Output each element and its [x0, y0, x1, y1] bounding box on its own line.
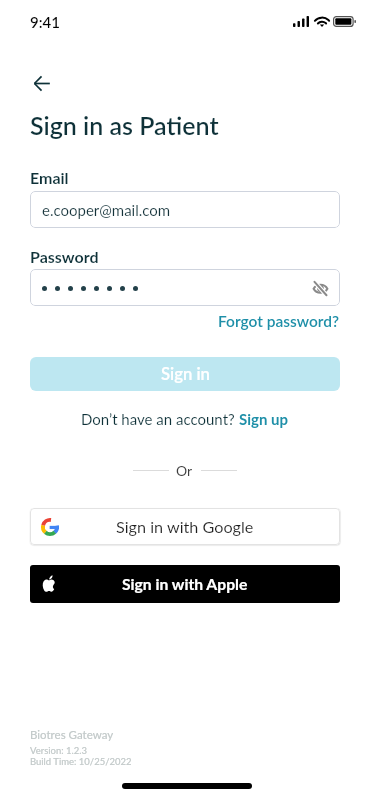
- button[interactable]: Sign up: [239, 410, 289, 428]
- staticText: Don’t have an account?: [81, 410, 239, 428]
- button[interactable]: Show password: [310, 278, 330, 298]
- button[interactable]: Sign in with Google: [30, 508, 340, 545]
- button[interactable]: Back: [22, 63, 62, 103]
- staticText: Sign in as Patient: [30, 110, 219, 140]
- button[interactable]: Show password: [30, 269, 340, 306]
- button[interactable]: Sign in with Apple: [30, 565, 340, 603]
- staticText: Build Time: 10/25/2022: [30, 756, 132, 767]
- staticText: Sign up: [239, 410, 289, 428]
- button[interactable]: Sign in: [30, 357, 340, 391]
- staticText: Version: 1.2.3: [30, 745, 88, 756]
- button[interactable]: e.cooper@mail.com: [30, 191, 340, 228]
- staticText: 9:41: [30, 13, 60, 31]
- staticText: Password: [30, 247, 99, 266]
- staticText: Sign in with Apple: [122, 575, 248, 594]
- staticText: Sign in: [161, 364, 210, 384]
- staticText: Email: [30, 168, 69, 187]
- staticText: Sign in with Google: [116, 517, 254, 536]
- staticText: Biotres Gateway: [30, 728, 114, 742]
- staticText: Forgot password?: [218, 312, 340, 331]
- staticText: Or: [176, 462, 193, 479]
- staticText: e.cooper@mail.com: [42, 201, 171, 219]
- button[interactable]: Forgot password?: [218, 312, 340, 331]
